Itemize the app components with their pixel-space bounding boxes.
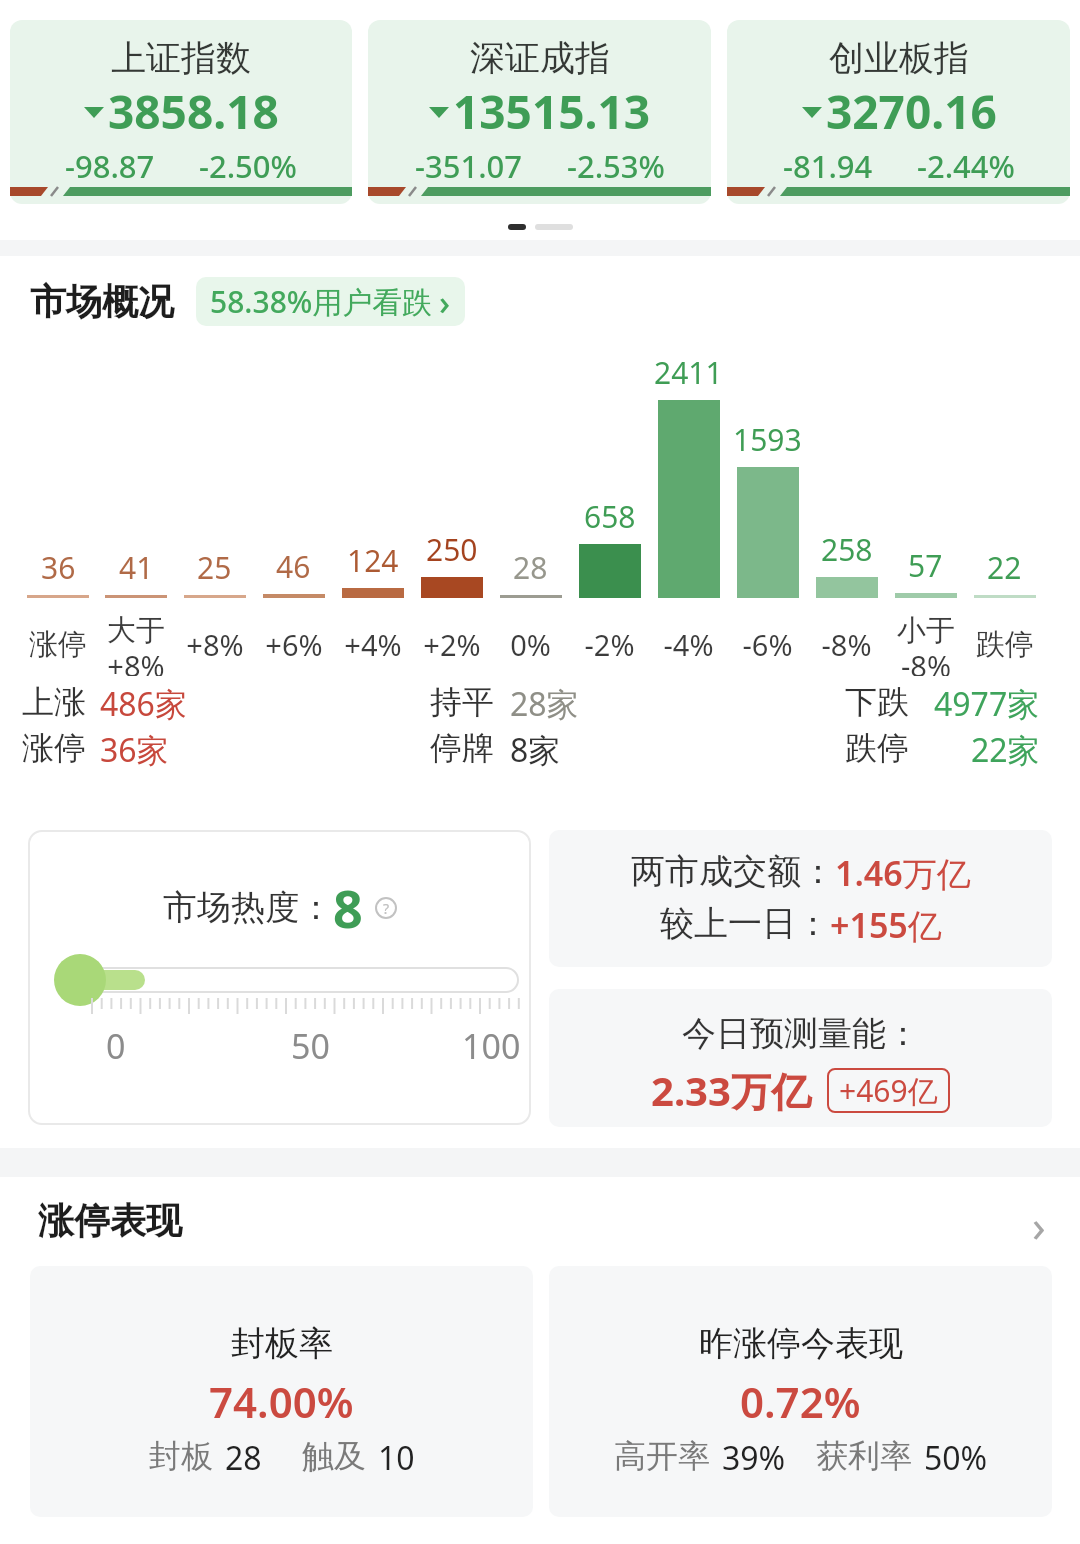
staticText: 25 — [197, 547, 232, 588]
staticText: 上涨 — [22, 682, 86, 722]
staticText: 持平 — [430, 682, 494, 722]
staticText: 28家 — [510, 682, 579, 724]
staticText: 停牌 — [430, 728, 494, 768]
staticText: 486家 — [100, 682, 187, 724]
button[interactable]: 上证指数 — [10, 20, 352, 204]
staticText: -2.44% — [917, 145, 1015, 187]
staticText: -351.07 — [415, 145, 523, 187]
staticText: 跌停 — [845, 728, 909, 768]
staticText: 下跌 — [845, 682, 909, 722]
staticText: 46 — [276, 546, 311, 587]
staticText: 今日预测量能： — [682, 1012, 920, 1055]
staticText: 22 — [987, 547, 1022, 588]
staticText: 50% — [924, 1436, 988, 1480]
staticText: 58.38%用户看跌 — [210, 281, 433, 322]
staticText: 两市成交额： — [631, 850, 835, 893]
staticText: 28 — [225, 1436, 262, 1480]
staticText: 74.00% — [209, 1373, 354, 1430]
button[interactable]: 两市成交额： — [549, 830, 1052, 967]
staticText: +155亿 — [830, 902, 942, 948]
staticText: 0 — [106, 1023, 126, 1063]
staticText: +4% — [344, 625, 402, 664]
staticText: 22家 — [971, 728, 1040, 770]
staticText: 3858.18 — [108, 80, 279, 143]
staticText: -6% — [742, 625, 793, 664]
staticText: -81.94 — [783, 145, 873, 187]
staticText: 250 — [426, 529, 478, 570]
staticText: ? — [383, 899, 390, 918]
staticText: 13515.13 — [453, 80, 651, 143]
staticText: +469亿 — [839, 1070, 938, 1111]
staticText: 124 — [347, 540, 399, 581]
staticText: 获利率 — [816, 1436, 912, 1476]
staticText: 41 — [119, 547, 154, 588]
staticText: 涨停 — [29, 626, 87, 663]
staticText: 上证指数 — [111, 36, 251, 80]
staticText: 昨涨停今表现 — [699, 1322, 903, 1365]
staticText: 深证成指 — [470, 36, 610, 80]
staticText: 658 — [584, 496, 636, 537]
staticText: -8% — [821, 625, 872, 664]
staticText: 100 — [462, 1023, 521, 1063]
staticText: 小于 -8% — [897, 612, 955, 676]
staticText: 258 — [821, 529, 873, 570]
staticText: 39% — [722, 1436, 786, 1480]
staticText: 市场热度： — [163, 886, 333, 929]
staticText: 0% — [510, 625, 551, 664]
staticText: 高开率 — [614, 1436, 710, 1476]
staticText: 跌停 — [976, 626, 1034, 663]
staticText: -98.87 — [65, 145, 155, 187]
button[interactable]: 市场热度： — [28, 830, 531, 1125]
staticText: 0.72% — [740, 1373, 861, 1430]
staticText: 涨停 — [22, 728, 86, 768]
staticText: 8 — [333, 872, 363, 943]
staticText: 57 — [908, 545, 943, 586]
staticText: 涨停表现 — [38, 1198, 182, 1243]
staticText: 2411 — [654, 352, 723, 393]
staticText: 36 — [41, 547, 76, 588]
staticText: 1593 — [733, 419, 802, 460]
staticText: 1.46万亿 — [835, 850, 971, 896]
button[interactable]: 深证成指 — [368, 20, 711, 204]
staticText: -2.50% — [199, 145, 297, 187]
staticText: 8家 — [510, 728, 561, 770]
staticText: 较上一日： — [660, 902, 830, 945]
staticText: 50 — [291, 1023, 330, 1063]
staticText: 封板 — [149, 1436, 213, 1476]
staticText: 28 — [513, 547, 548, 588]
staticText: 3270.16 — [826, 80, 997, 143]
staticText: -4% — [663, 625, 714, 664]
staticText: 封板率 — [231, 1322, 333, 1365]
button[interactable]: 封板率 — [30, 1266, 533, 1517]
staticText: 2.33万亿 — [651, 1063, 811, 1118]
staticText: +8% — [186, 625, 244, 664]
staticText: › — [1032, 1195, 1046, 1245]
staticText: 创业板指 — [829, 36, 969, 80]
staticText: 4977家 — [934, 682, 1040, 724]
button[interactable]: 涨停表现 — [0, 1195, 1080, 1245]
staticText: 大于 +8% — [107, 612, 165, 676]
staticText: 市场概况 — [30, 279, 174, 324]
staticText: 10 — [378, 1436, 415, 1480]
staticText: +6% — [265, 625, 323, 664]
button[interactable]: 今日预测量能： — [549, 989, 1052, 1127]
staticText: 36家 — [100, 728, 169, 770]
staticText: 触及 — [302, 1436, 366, 1476]
button[interactable]: 昨涨停今表现 — [549, 1266, 1052, 1517]
staticText: › — [439, 279, 451, 325]
button[interactable]: 创业板指 — [727, 20, 1070, 204]
button[interactable]: 58.38%用户看跌 — [196, 277, 465, 326]
staticText: +2% — [423, 625, 481, 664]
staticText: -2.53% — [567, 145, 665, 187]
staticText: -2% — [584, 625, 635, 664]
